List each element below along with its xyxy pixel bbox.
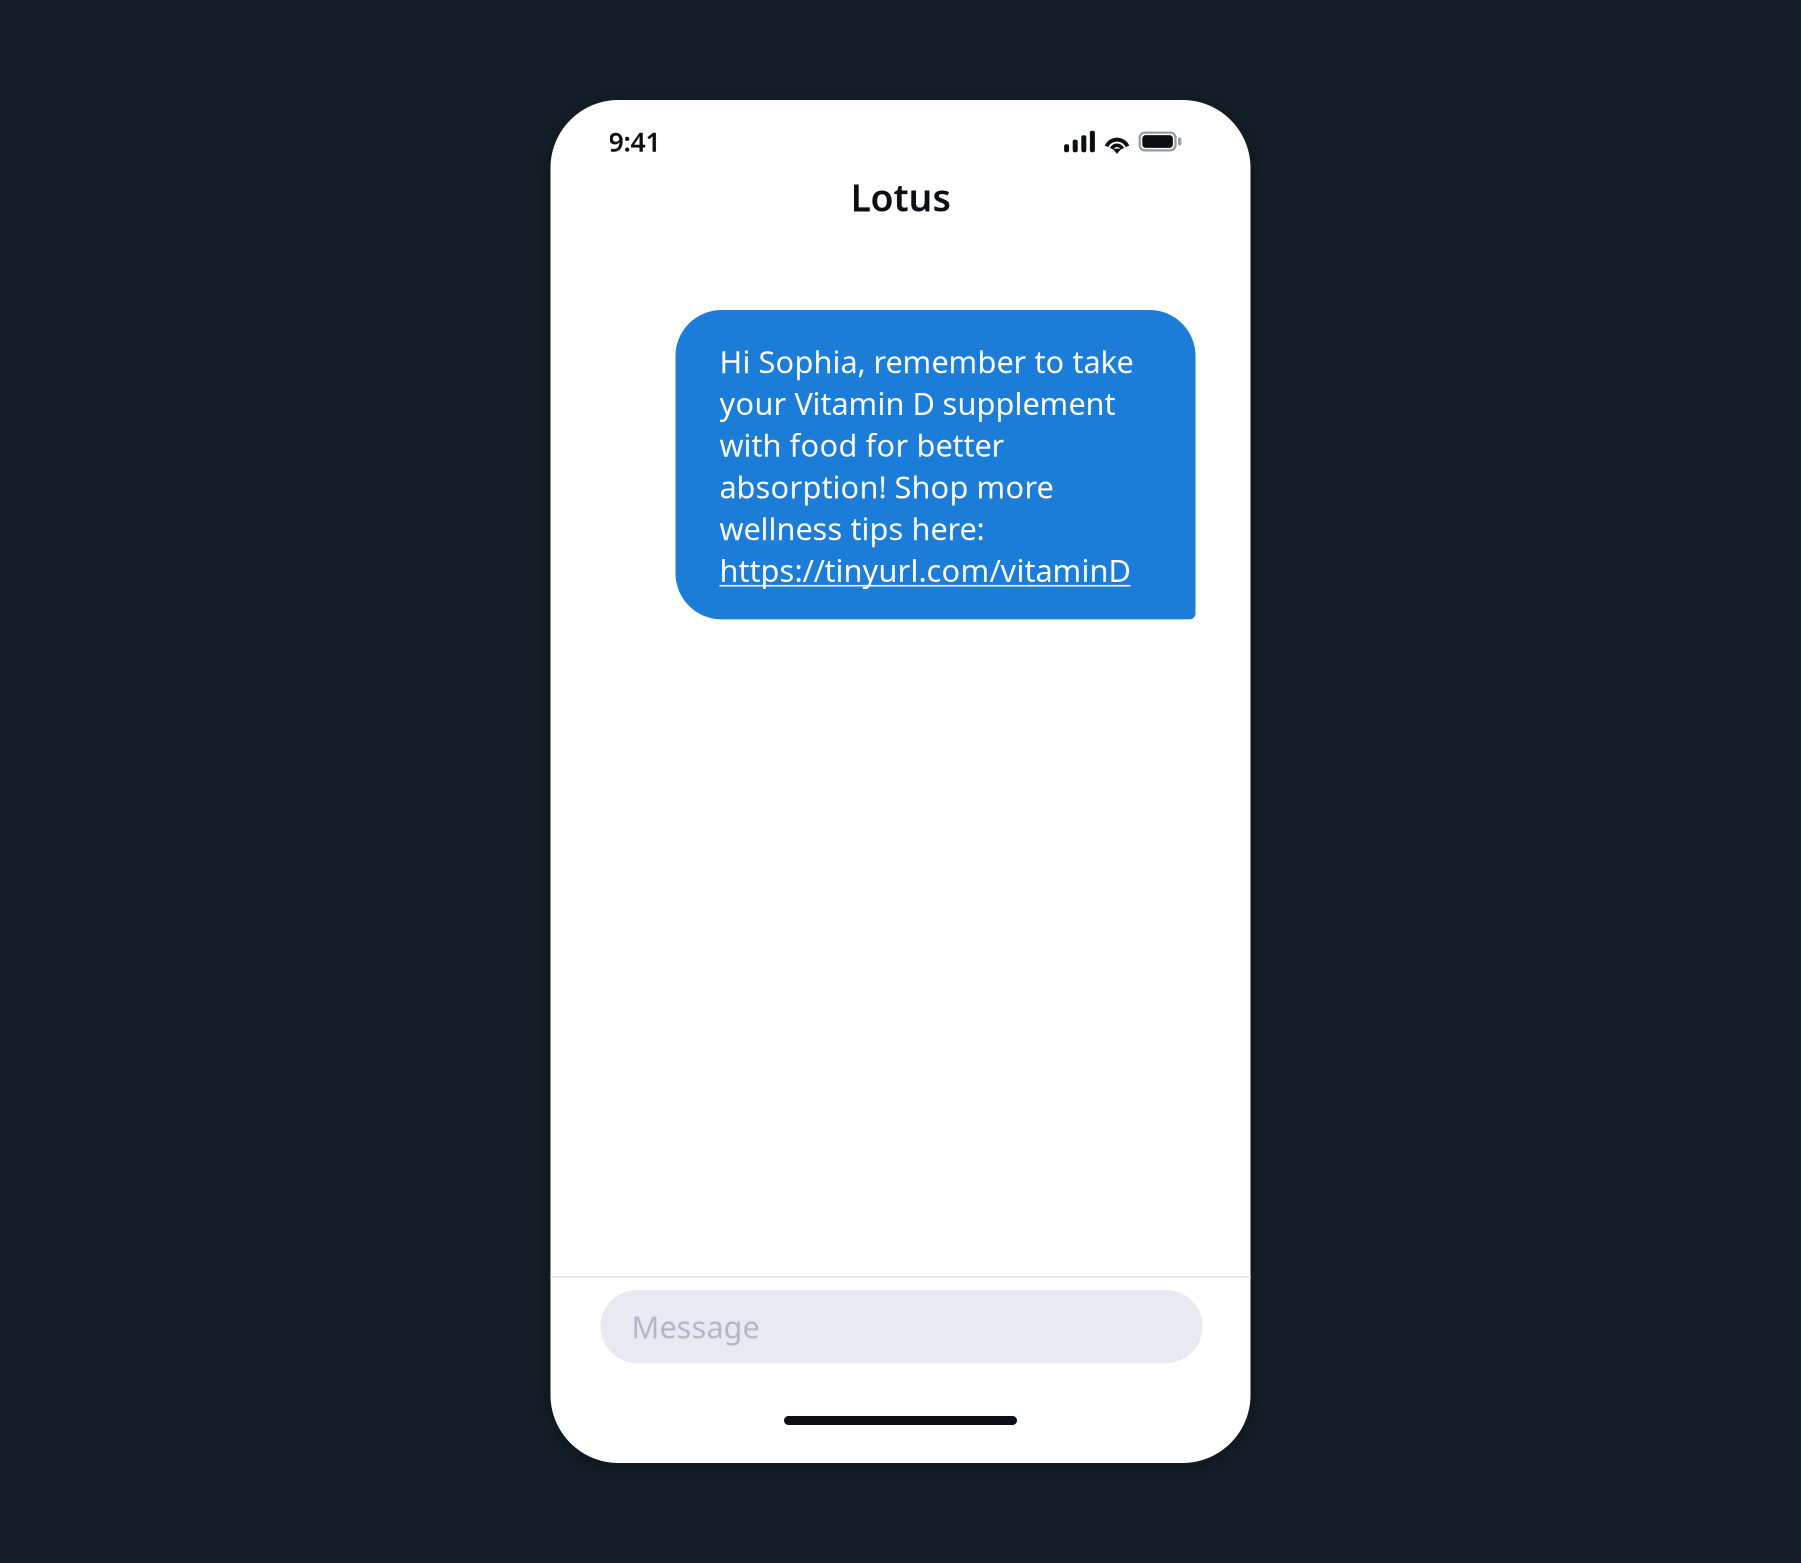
staticText: your Vitamin D supplement (719, 383, 1115, 423)
button[interactable]: Message (600, 1290, 1202, 1363)
button[interactable]: Home (784, 1416, 1017, 1425)
button[interactable]: Lotus (550, 163, 1250, 231)
staticText: https://tinyurl.com/vitaminD (719, 550, 1130, 590)
staticText: absorption! Shop more (719, 466, 1053, 507)
staticText: Hi Sophia, remember to take (719, 341, 1133, 382)
staticText: Lotus (850, 172, 950, 222)
staticText: with food for better (719, 424, 1004, 465)
staticText: 9:41 (608, 124, 660, 159)
staticText: Message (631, 1306, 759, 1347)
staticText: wellness tips here: (719, 508, 984, 549)
button[interactable]: Hi Sophia, remember to take (675, 310, 1195, 619)
